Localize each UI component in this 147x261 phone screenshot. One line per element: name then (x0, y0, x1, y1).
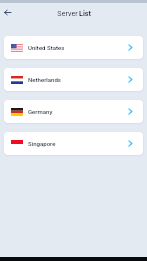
button[interactable]: Back (1, 6, 14, 19)
staticText: Singapore (28, 140, 56, 147)
staticText: Server (56, 9, 79, 17)
button[interactable]: United States (4, 36, 143, 59)
button[interactable]: Germany (4, 100, 143, 123)
button[interactable]: Singapore (4, 132, 143, 155)
staticText: United States (28, 44, 65, 51)
staticText: Netherlands (28, 76, 61, 83)
button[interactable]: Netherlands (4, 68, 143, 91)
staticText: List (79, 9, 91, 17)
staticText: Germany (28, 108, 53, 115)
